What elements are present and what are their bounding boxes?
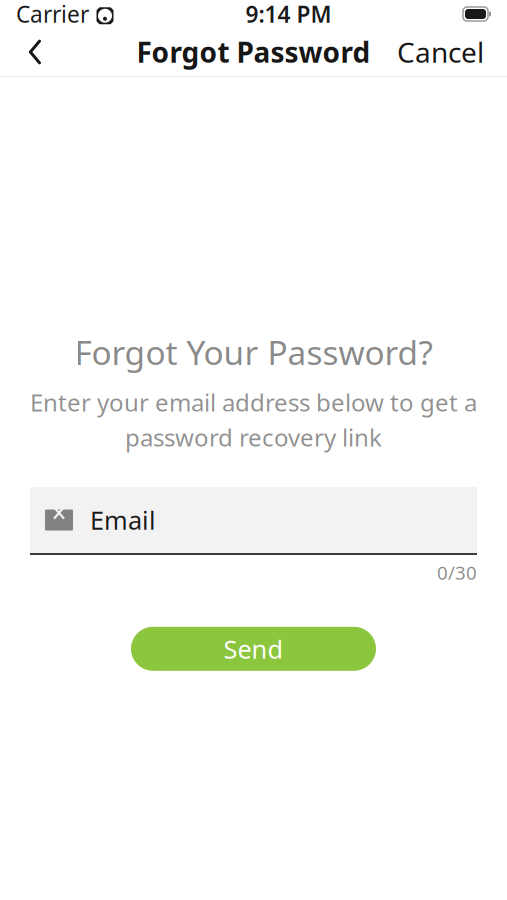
staticText: Enter your email address below to get a bbox=[30, 386, 477, 418]
staticText: Forgot Password bbox=[136, 33, 370, 71]
staticText: Send bbox=[223, 632, 283, 666]
staticText: Email bbox=[90, 503, 156, 537]
button[interactable]: Send bbox=[131, 627, 376, 671]
staticText: 9:14 PM bbox=[245, 0, 331, 29]
staticText: Carrier bbox=[16, 0, 89, 29]
button[interactable]: Back bbox=[9, 28, 61, 76]
staticText: 0/30 bbox=[437, 560, 477, 585]
staticText: Cancel bbox=[397, 33, 484, 71]
button[interactable]: Cancel bbox=[383, 28, 498, 76]
staticText: password recovery link bbox=[125, 421, 382, 453]
staticText: Forgot Your Password? bbox=[74, 330, 432, 374]
